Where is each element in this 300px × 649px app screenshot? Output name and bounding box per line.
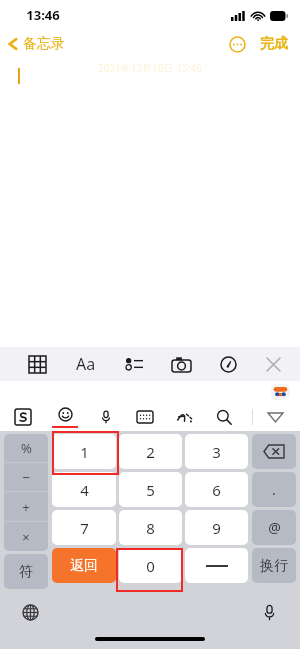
button[interactable]: 9 bbox=[185, 510, 248, 545]
button[interactable]: Sogou mascot bbox=[271, 384, 290, 400]
button[interactable]: 3 bbox=[185, 434, 248, 469]
button[interactable]: Table bbox=[26, 353, 49, 376]
staticText: 0 bbox=[146, 556, 155, 576]
staticText: @ bbox=[268, 518, 281, 537]
staticText: 7 bbox=[80, 518, 89, 538]
staticText: 1 bbox=[80, 442, 89, 462]
button[interactable]: Markup bbox=[217, 353, 240, 376]
staticText: 3 bbox=[212, 442, 221, 462]
staticText: 符 bbox=[19, 563, 33, 581]
button[interactable]: Space bbox=[185, 548, 248, 583]
button[interactable]: 5 bbox=[119, 472, 182, 507]
staticText: × bbox=[22, 528, 30, 546]
button[interactable]: 2 bbox=[119, 434, 182, 469]
staticText: − bbox=[22, 468, 30, 486]
staticText: 4 bbox=[80, 480, 89, 500]
button[interactable]: 换行 bbox=[252, 548, 296, 583]
button[interactable]: 6 bbox=[185, 472, 248, 507]
staticText: 返回 bbox=[70, 557, 98, 575]
button[interactable]: − bbox=[4, 463, 48, 491]
button[interactable]: @ bbox=[252, 510, 296, 545]
staticText: 8 bbox=[146, 518, 155, 538]
button[interactable]: 符 bbox=[4, 554, 48, 589]
button[interactable]: % bbox=[4, 434, 48, 462]
staticText: + bbox=[22, 498, 30, 516]
staticText: . bbox=[272, 480, 276, 499]
staticText: 6 bbox=[212, 480, 221, 500]
button[interactable]: Hide keyboard bbox=[265, 410, 286, 425]
button[interactable]: Keyboard bbox=[134, 408, 156, 426]
button[interactable]: Camera bbox=[169, 354, 194, 375]
staticText: 2021年12月10日 13:46 bbox=[98, 61, 202, 75]
button[interactable]: 8 bbox=[119, 510, 182, 545]
button[interactable]: 备忘录 bbox=[0, 33, 73, 55]
staticText: 5 bbox=[146, 480, 155, 500]
button[interactable]: Dictation bbox=[261, 604, 278, 621]
button[interactable]: 7 bbox=[52, 510, 116, 545]
button[interactable]: Delete bbox=[252, 434, 296, 469]
staticText: % bbox=[21, 439, 32, 457]
button[interactable]: 完成 bbox=[258, 32, 290, 56]
button[interactable]: Format text bbox=[73, 350, 99, 378]
staticText: 备忘录 bbox=[23, 35, 65, 53]
button[interactable]: Checklist bbox=[123, 354, 146, 374]
button[interactable]: × bbox=[4, 522, 48, 551]
staticText: 13:46 bbox=[26, 6, 60, 24]
button[interactable]: + bbox=[4, 492, 48, 521]
button[interactable]: 1 bbox=[52, 434, 116, 469]
staticText: 换行 bbox=[260, 557, 288, 575]
button[interactable]: 4 bbox=[52, 472, 116, 507]
button[interactable]: 0 bbox=[119, 548, 182, 583]
button[interactable]: Emoji bbox=[52, 407, 78, 428]
button[interactable]: Sogou bbox=[12, 406, 34, 428]
staticText: 2 bbox=[146, 442, 155, 462]
button[interactable]: Search bbox=[213, 406, 235, 428]
staticText: 9 bbox=[212, 518, 221, 538]
staticText: 完成 bbox=[260, 35, 288, 53]
button[interactable]: . bbox=[252, 472, 296, 507]
button[interactable]: Voice input bbox=[96, 407, 116, 427]
button[interactable]: Handwriting bbox=[173, 407, 196, 427]
button[interactable]: Switch language bbox=[22, 604, 39, 621]
button[interactable]: Close bbox=[263, 354, 284, 375]
button[interactable]: 返回 bbox=[52, 548, 116, 583]
button[interactable]: More options bbox=[226, 33, 249, 56]
staticText: Aa bbox=[76, 353, 96, 375]
